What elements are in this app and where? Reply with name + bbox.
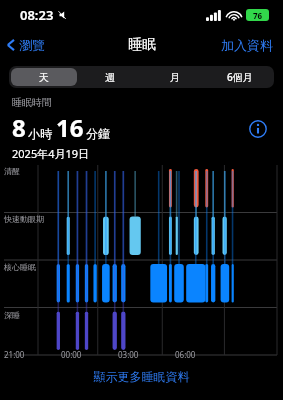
staticText: 03:00 [118, 349, 139, 360]
staticText: 月 [170, 71, 180, 84]
button[interactable]: 6個月 [207, 68, 272, 86]
button[interactable]: 加入資料 [221, 37, 283, 53]
staticText: 16 [56, 111, 84, 144]
staticText: 76 [253, 10, 263, 21]
staticText: 21:00 [4, 349, 25, 360]
staticText: 08:23 [20, 6, 54, 24]
staticText: 8 [12, 111, 26, 144]
button[interactable]: 顯示更多睡眠資料 [0, 367, 283, 386]
staticText: 週 [105, 71, 115, 84]
staticText: 6個月 [227, 70, 253, 84]
staticText: 00:00 [61, 349, 82, 360]
staticText: 分鐘 [86, 126, 110, 141]
staticText: 06:00 [175, 349, 196, 360]
staticText: 睡眠 [128, 36, 156, 54]
staticText: 深睡 [4, 310, 20, 320]
staticText: 睡眠時間 [12, 96, 52, 109]
staticText: 2025年4月19日 [12, 146, 90, 161]
button[interactable]: About sleep data [245, 116, 271, 142]
staticText: 核心睡眠 [4, 262, 36, 272]
staticText: 天 [39, 71, 49, 84]
staticText: 清醒 [4, 166, 20, 176]
button[interactable]: 瀏覽 [0, 37, 53, 53]
button[interactable]: 天 [11, 68, 77, 86]
staticText: 瀏覽 [19, 37, 45, 53]
button[interactable]: 週 [77, 68, 142, 86]
button[interactable]: 月 [142, 68, 207, 86]
staticText: 小時 [28, 126, 52, 141]
staticText: 快速動眼期 [4, 214, 44, 224]
